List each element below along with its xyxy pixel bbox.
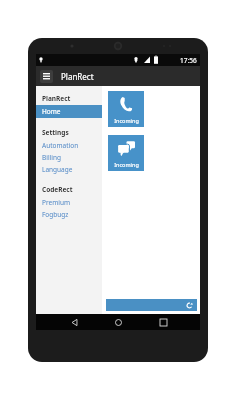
button[interactable]: Back xyxy=(67,315,81,329)
staticText: Settings xyxy=(42,128,69,137)
staticText: Incoming xyxy=(114,117,139,124)
button[interactable]: Home xyxy=(111,315,125,329)
button[interactable]: Home xyxy=(36,105,102,118)
staticText: Language xyxy=(42,165,73,174)
button[interactable]: Open navigation menu xyxy=(40,70,53,83)
button[interactable]: Recent apps xyxy=(156,315,170,329)
button[interactable]: Incoming messages xyxy=(108,135,144,171)
button[interactable]: Refresh xyxy=(106,299,197,311)
staticText: Automation xyxy=(42,141,79,150)
staticText: Incoming xyxy=(114,161,139,168)
staticText: CodeRect xyxy=(42,185,73,194)
staticText: PlanRect xyxy=(42,94,71,103)
button[interactable]: Premium xyxy=(36,196,102,208)
button[interactable]: Automation xyxy=(36,139,102,151)
staticText: Home xyxy=(42,107,61,116)
button[interactable]: Billing xyxy=(36,151,102,163)
button[interactable]: Fogbugz xyxy=(36,208,102,220)
button[interactable]: Incoming calls xyxy=(108,91,144,127)
staticText: Premium xyxy=(42,198,71,207)
staticText: Fogbugz xyxy=(42,210,69,219)
button[interactable]: Language xyxy=(36,163,102,175)
staticText: Billing xyxy=(42,153,61,162)
staticText: 17:56 xyxy=(180,56,197,65)
staticText: PlanRect xyxy=(61,71,94,82)
